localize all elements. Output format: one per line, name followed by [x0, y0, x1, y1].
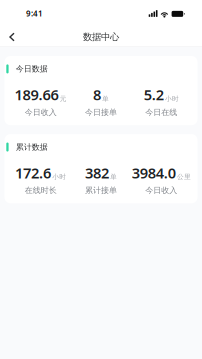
staticText: 累计接单 — [85, 185, 117, 195]
staticText: 数据中心 — [83, 31, 119, 43]
staticText: 5.2 — [144, 85, 164, 104]
staticText: 元 — [60, 95, 67, 103]
staticText: 3984.0 — [132, 163, 176, 182]
staticText: 单 — [102, 95, 109, 103]
staticText: 今日收入 — [25, 107, 57, 117]
button[interactable]: Back — [1, 27, 23, 47]
staticText: 172.6 — [15, 163, 51, 182]
staticText: 在线时长 — [25, 185, 57, 195]
staticText: 今日数据 — [16, 64, 48, 74]
staticText: 单 — [110, 173, 117, 181]
staticText: 小时 — [165, 95, 179, 103]
staticText: 今日收入 — [145, 185, 177, 195]
staticText: 382 — [85, 163, 109, 182]
staticText: 今日接单 — [85, 107, 117, 117]
staticText: 今日在线 — [145, 107, 177, 117]
staticText: 9:41 — [26, 8, 43, 19]
staticText: 公里 — [177, 173, 191, 181]
staticText: 8 — [93, 85, 101, 104]
staticText: 小时 — [52, 173, 66, 181]
staticText: 189.66 — [15, 85, 59, 104]
staticText: 累计数据 — [16, 142, 48, 152]
